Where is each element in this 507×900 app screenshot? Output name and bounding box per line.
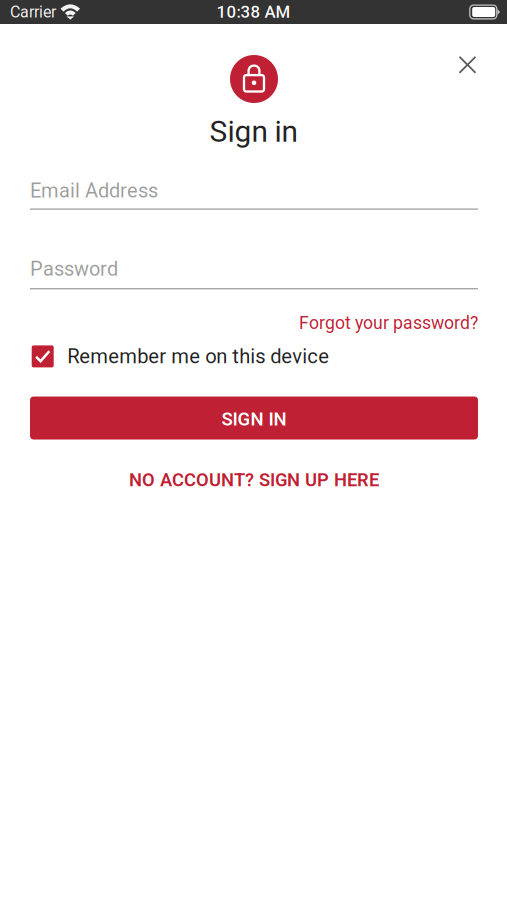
staticText: Forgot your password? [299,313,478,333]
staticText: 10:38 AM [216,2,290,22]
staticText: NO ACCOUNT? SIGN UP HERE [129,469,379,491]
staticText: Carrier [10,3,56,21]
button[interactable]: Forgot your password? [30,312,478,334]
staticText: Remember me on this device [67,345,329,368]
staticText: Password [30,257,118,281]
button[interactable]: Remember me on this device [32,344,480,368]
staticText: SIGN IN [221,408,286,430]
staticText: Email Address [30,179,158,202]
button[interactable]: NO ACCOUNT? SIGN UP HERE [30,467,478,493]
button[interactable]: Close [445,43,489,87]
button[interactable]: SIGN IN [30,396,478,439]
staticText: Sign in [209,114,297,149]
